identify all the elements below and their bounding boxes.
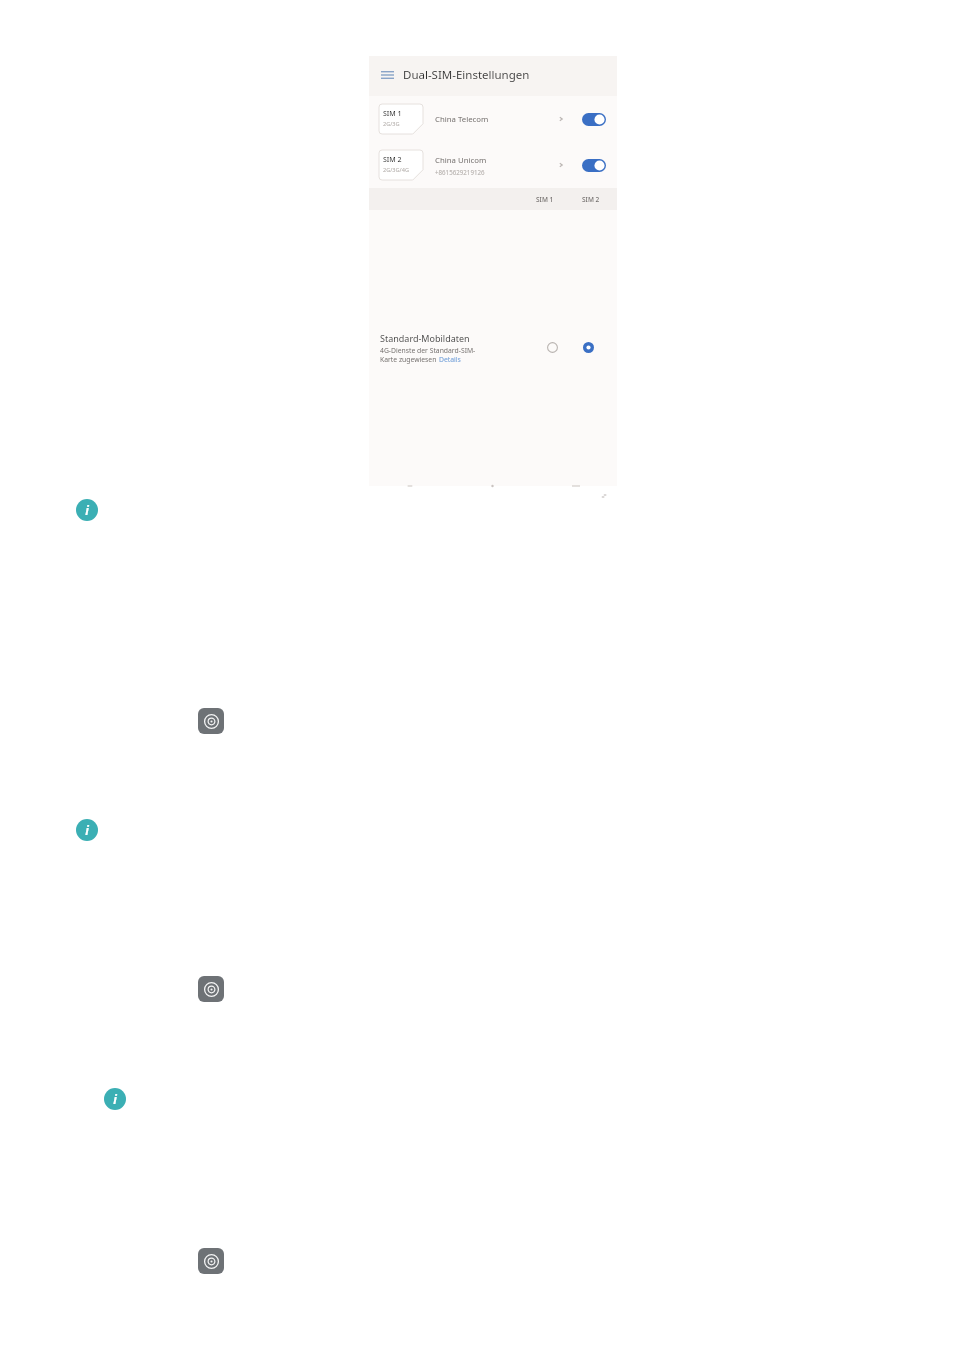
staticText: SIM 2 — [582, 195, 600, 204]
button[interactable]: Menu — [377, 65, 397, 85]
staticText: SIM 1 — [383, 109, 402, 119]
staticText: i — [113, 1091, 117, 1107]
staticText: SIM 1 — [536, 195, 554, 204]
button[interactable]: Details — [439, 355, 461, 364]
button[interactable] — [534, 218, 570, 477]
button[interactable]: Settings shortcut — [198, 1248, 224, 1274]
other: Info — [76, 499, 98, 521]
staticText: 2G/3G/4G — [383, 166, 409, 174]
button[interactable]: Toggle SIM — [582, 113, 606, 126]
button[interactable]: SIM 2 — [369, 142, 617, 188]
staticText: i — [85, 502, 89, 518]
button[interactable]: Standard-Mobildaten — [369, 210, 617, 486]
button[interactable]: Toggle SIM — [582, 159, 606, 172]
staticText: SIM 2 — [383, 155, 402, 165]
button[interactable] — [570, 218, 606, 477]
other: Info — [104, 1088, 126, 1110]
staticText: 4G-Dienste der Standard-SIM- — [380, 346, 476, 355]
staticText: Karte zugewiesen — [380, 355, 439, 364]
other: Info — [76, 819, 98, 841]
staticText: i — [85, 822, 89, 838]
staticText: 2G/3G — [383, 120, 400, 128]
staticText: China Telecom — [435, 114, 489, 125]
staticText: China Unicom — [435, 155, 487, 166]
staticText: Standard-Mobildaten — [380, 332, 470, 344]
button[interactable]: SIM 1 — [369, 96, 617, 142]
button[interactable]: Settings shortcut — [198, 708, 224, 734]
staticText: +8615629219126 — [435, 168, 485, 176]
button[interactable]: Settings shortcut — [198, 976, 224, 1002]
staticText: Dual-SIM-Einstellungen — [403, 67, 530, 83]
